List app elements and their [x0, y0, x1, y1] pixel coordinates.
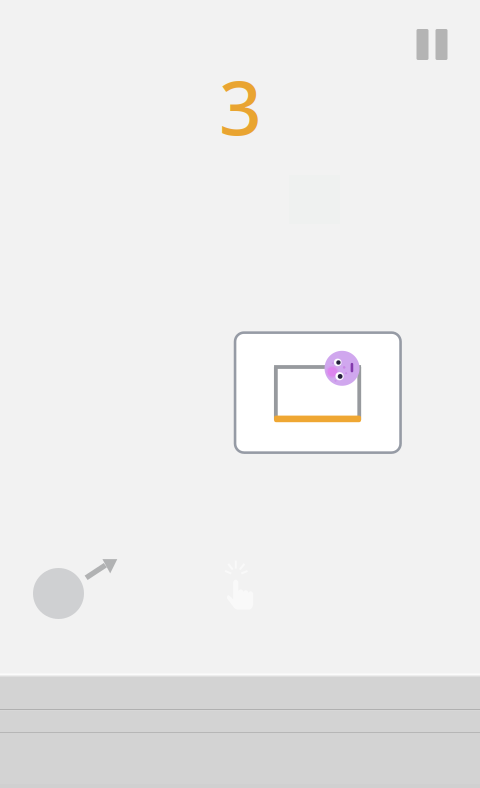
button[interactable]: Pause — [409, 21, 455, 67]
button[interactable]: Aim launcher — [26, 547, 126, 627]
button[interactable]: Tap to launch — [224, 560, 256, 611]
staticText: 3 — [219, 56, 262, 156]
